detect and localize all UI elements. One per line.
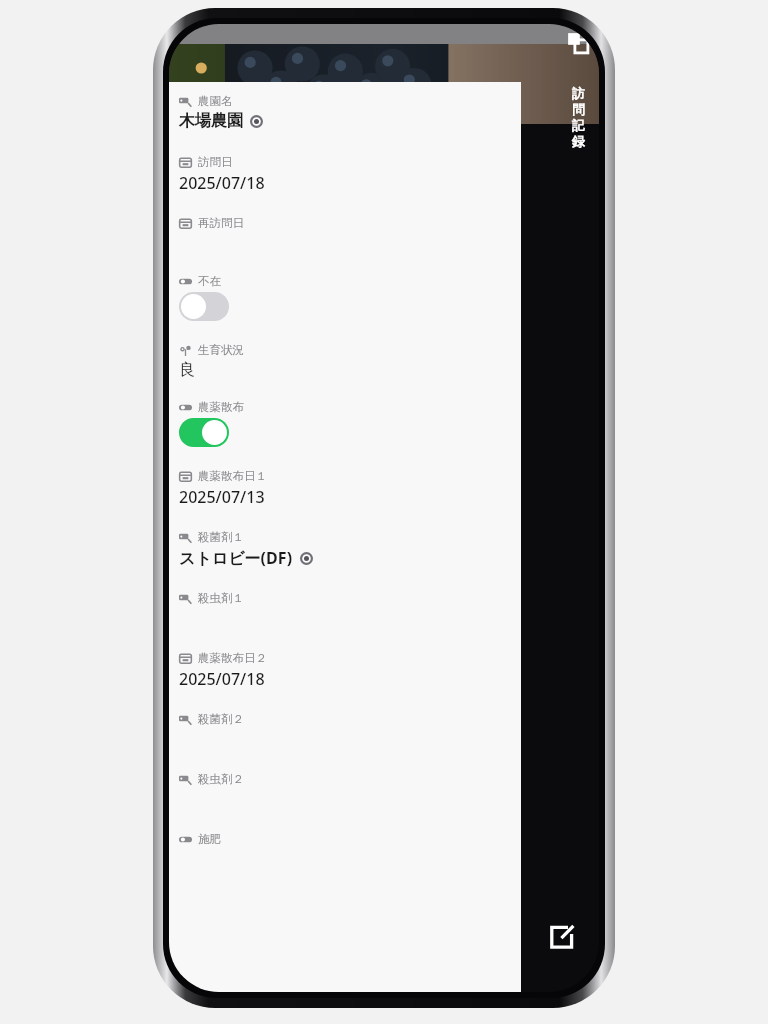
staticText: 再訪問日 xyxy=(198,216,244,230)
button[interactable]: 殺虫剤１ xyxy=(179,591,511,627)
button[interactable]: 生育状況 xyxy=(179,343,511,380)
button[interactable]: On xyxy=(179,418,229,447)
staticText: 農園名 xyxy=(198,94,233,108)
staticText: 問 xyxy=(572,101,585,117)
button[interactable]: 殺虫剤２ xyxy=(179,772,511,808)
staticText: 殺虫剤１ xyxy=(198,591,244,605)
button[interactable]: 不在 xyxy=(179,274,511,321)
staticText: 農薬散布 xyxy=(198,400,244,414)
button[interactable]: Detail xyxy=(300,552,313,565)
button[interactable]: Off xyxy=(179,292,229,321)
staticText: 施肥 xyxy=(198,832,221,846)
button[interactable]: 殺菌剤１ xyxy=(179,530,511,569)
staticText: 殺菌剤１ xyxy=(198,530,244,544)
staticText: 木場農園 xyxy=(179,111,243,131)
staticText: 訪問日 xyxy=(198,155,233,169)
staticText: 不在 xyxy=(198,274,221,288)
staticText: 記 xyxy=(572,117,585,133)
button[interactable]: 再訪問日 xyxy=(179,216,511,252)
staticText: 農薬散布日２ xyxy=(198,651,267,665)
staticText: 良 xyxy=(179,360,195,380)
staticText: 殺菌剤２ xyxy=(198,712,244,726)
button[interactable]: Edit xyxy=(547,922,577,952)
staticText: 2025/07/18 xyxy=(179,668,265,690)
button[interactable]: 農薬散布 xyxy=(179,400,511,447)
staticText: 2025/07/13 xyxy=(179,486,265,508)
button[interactable]: Detail xyxy=(250,115,263,128)
button[interactable]: 訪問日 xyxy=(179,155,511,194)
button[interactable]: Duplicate xyxy=(565,30,591,56)
staticText: 生育状況 xyxy=(198,343,244,357)
staticText: 殺虫剤２ xyxy=(198,772,244,786)
staticText: 録 xyxy=(572,133,585,149)
staticText: 農薬散布日１ xyxy=(198,469,267,483)
button[interactable]: 農園名 xyxy=(179,94,511,131)
staticText: ストロビー(DF) xyxy=(179,547,293,569)
staticText: 訪 xyxy=(572,85,585,101)
button[interactable]: 農薬散布日２ xyxy=(179,651,511,690)
button[interactable]: 農薬散布日１ xyxy=(179,469,511,508)
button[interactable]: 施肥 xyxy=(179,832,511,846)
button[interactable]: 殺菌剤２ xyxy=(179,712,511,748)
staticText: 2025/07/18 xyxy=(179,172,265,194)
